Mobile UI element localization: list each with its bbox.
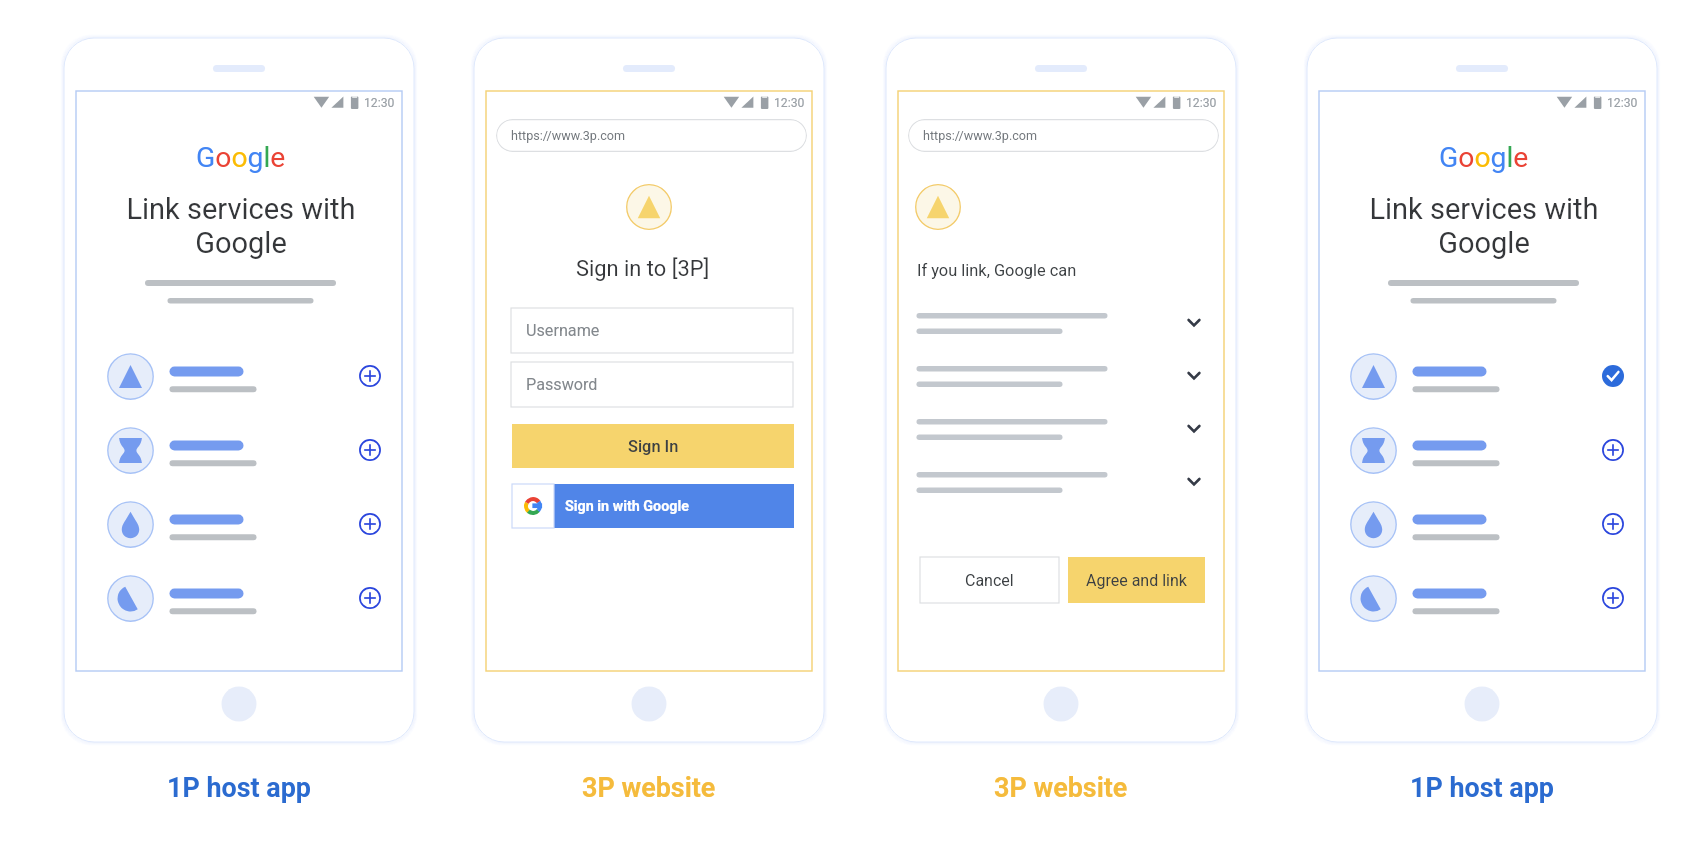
- staticText: Link services with Google: [126, 192, 356, 260]
- button[interactable]: Add service: [76, 568, 402, 628]
- button[interactable]: Add service: [1596, 581, 1630, 615]
- staticText: 3P website: [582, 772, 716, 804]
- button[interactable]: Add service: [1596, 507, 1630, 541]
- button[interactable]: Add service: [1319, 568, 1645, 628]
- staticText: 3P website: [994, 772, 1128, 804]
- staticText: Google: [196, 141, 286, 174]
- staticText: 1P host app: [1410, 772, 1554, 804]
- staticText: https://www.3p.com: [511, 128, 626, 143]
- staticText: If you link, Google can: [917, 261, 1077, 280]
- button[interactable]: Cancel: [920, 557, 1059, 603]
- button[interactable]: Add service: [76, 494, 402, 554]
- button[interactable]: Agree and link: [1068, 557, 1205, 603]
- button[interactable]: Sign In: [512, 424, 794, 468]
- button[interactable]: https://www.3p.com: [496, 119, 807, 152]
- button[interactable]: Expand details: [898, 419, 1224, 453]
- staticText: Username: [526, 321, 600, 340]
- staticText: 12:30: [1186, 96, 1217, 110]
- staticText: 1P host app: [167, 772, 311, 804]
- staticText: Sign in with Google: [565, 498, 689, 515]
- staticText: Cancel: [965, 571, 1014, 590]
- staticText: https://www.3p.com: [923, 128, 1038, 143]
- button[interactable]: Add service: [1596, 433, 1630, 467]
- staticText: Sign In: [628, 437, 679, 456]
- button[interactable]: Add service: [1319, 420, 1645, 480]
- button[interactable]: Linked: [1319, 346, 1645, 406]
- button[interactable]: Add service: [353, 433, 387, 467]
- staticText: 12:30: [364, 96, 395, 110]
- button[interactable]: Add service: [76, 420, 402, 480]
- staticText: 12:30: [774, 96, 805, 110]
- button[interactable]: Add service: [353, 581, 387, 615]
- staticText: Google: [1439, 141, 1529, 174]
- button[interactable]: Add service: [76, 346, 402, 406]
- button[interactable]: Add service: [353, 507, 387, 541]
- button[interactable]: Expand details: [898, 313, 1224, 347]
- button[interactable]: Password: [511, 362, 793, 407]
- staticText: Link services with Google: [1369, 192, 1599, 260]
- button[interactable]: Expand details: [898, 366, 1224, 400]
- button[interactable]: https://www.3p.com: [908, 119, 1219, 152]
- button[interactable]: Linked: [1596, 359, 1630, 393]
- button[interactable]: Expand details: [898, 472, 1224, 506]
- button[interactable]: Username: [511, 308, 793, 353]
- button[interactable]: Sign in with Google: [512, 484, 794, 528]
- staticText: Agree and link: [1086, 571, 1187, 590]
- staticText: 12:30: [1607, 96, 1638, 110]
- button[interactable]: Add service: [1319, 494, 1645, 554]
- staticText: Password: [526, 375, 598, 394]
- button[interactable]: Add service: [353, 359, 387, 393]
- staticText: Sign in to [3P]: [576, 256, 710, 282]
